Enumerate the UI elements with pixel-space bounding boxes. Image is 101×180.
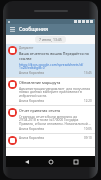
staticText: Обновление маршрута — [19, 80, 61, 85]
staticText: 10:05 — [84, 127, 92, 131]
staticText: Страницы отчета были менялись до 29.04.2… — [19, 114, 92, 126]
staticText: Ваша отчетность вошла Передаётся по ссыл… — [19, 51, 92, 61]
button[interactable]: Open navigation menu — [6, 24, 95, 35]
button[interactable]: Home — [46, 157, 55, 166]
button[interactable]: Отчет принятия отчета — [6, 106, 95, 134]
button[interactable]: Документ — [6, 44, 95, 78]
staticText: 12:20 — [84, 99, 92, 103]
staticText: Отчет принятия отчета — [19, 108, 61, 113]
staticText: Администрация уведомляет, для получения … — [19, 86, 92, 98]
staticText: 09:10 — [84, 136, 92, 140]
staticText: Алиса Королёва — [19, 71, 44, 75]
staticText: Алиса Королёва — [19, 99, 44, 103]
staticText: Алиса Королёва — [19, 127, 44, 131]
button[interactable]: Обновление маршрута — [6, 78, 95, 106]
button[interactable]: Open navigation menu — [9, 26, 16, 33]
staticText: Алиса Королёва — [19, 136, 44, 140]
button[interactable]: Алиса Королёва — [6, 134, 95, 148]
button[interactable]: Back — [22, 157, 31, 166]
staticText: 7 июня, 13:45 — [39, 37, 62, 42]
staticText: Документ — [19, 46, 34, 50]
staticText: 13:45 — [84, 71, 92, 75]
staticText: Сообщения — [19, 26, 48, 33]
button[interactable]: Recent apps — [71, 157, 80, 166]
staticText: https://docs.google.com/spreadsheets/d/1… — [19, 62, 92, 70]
